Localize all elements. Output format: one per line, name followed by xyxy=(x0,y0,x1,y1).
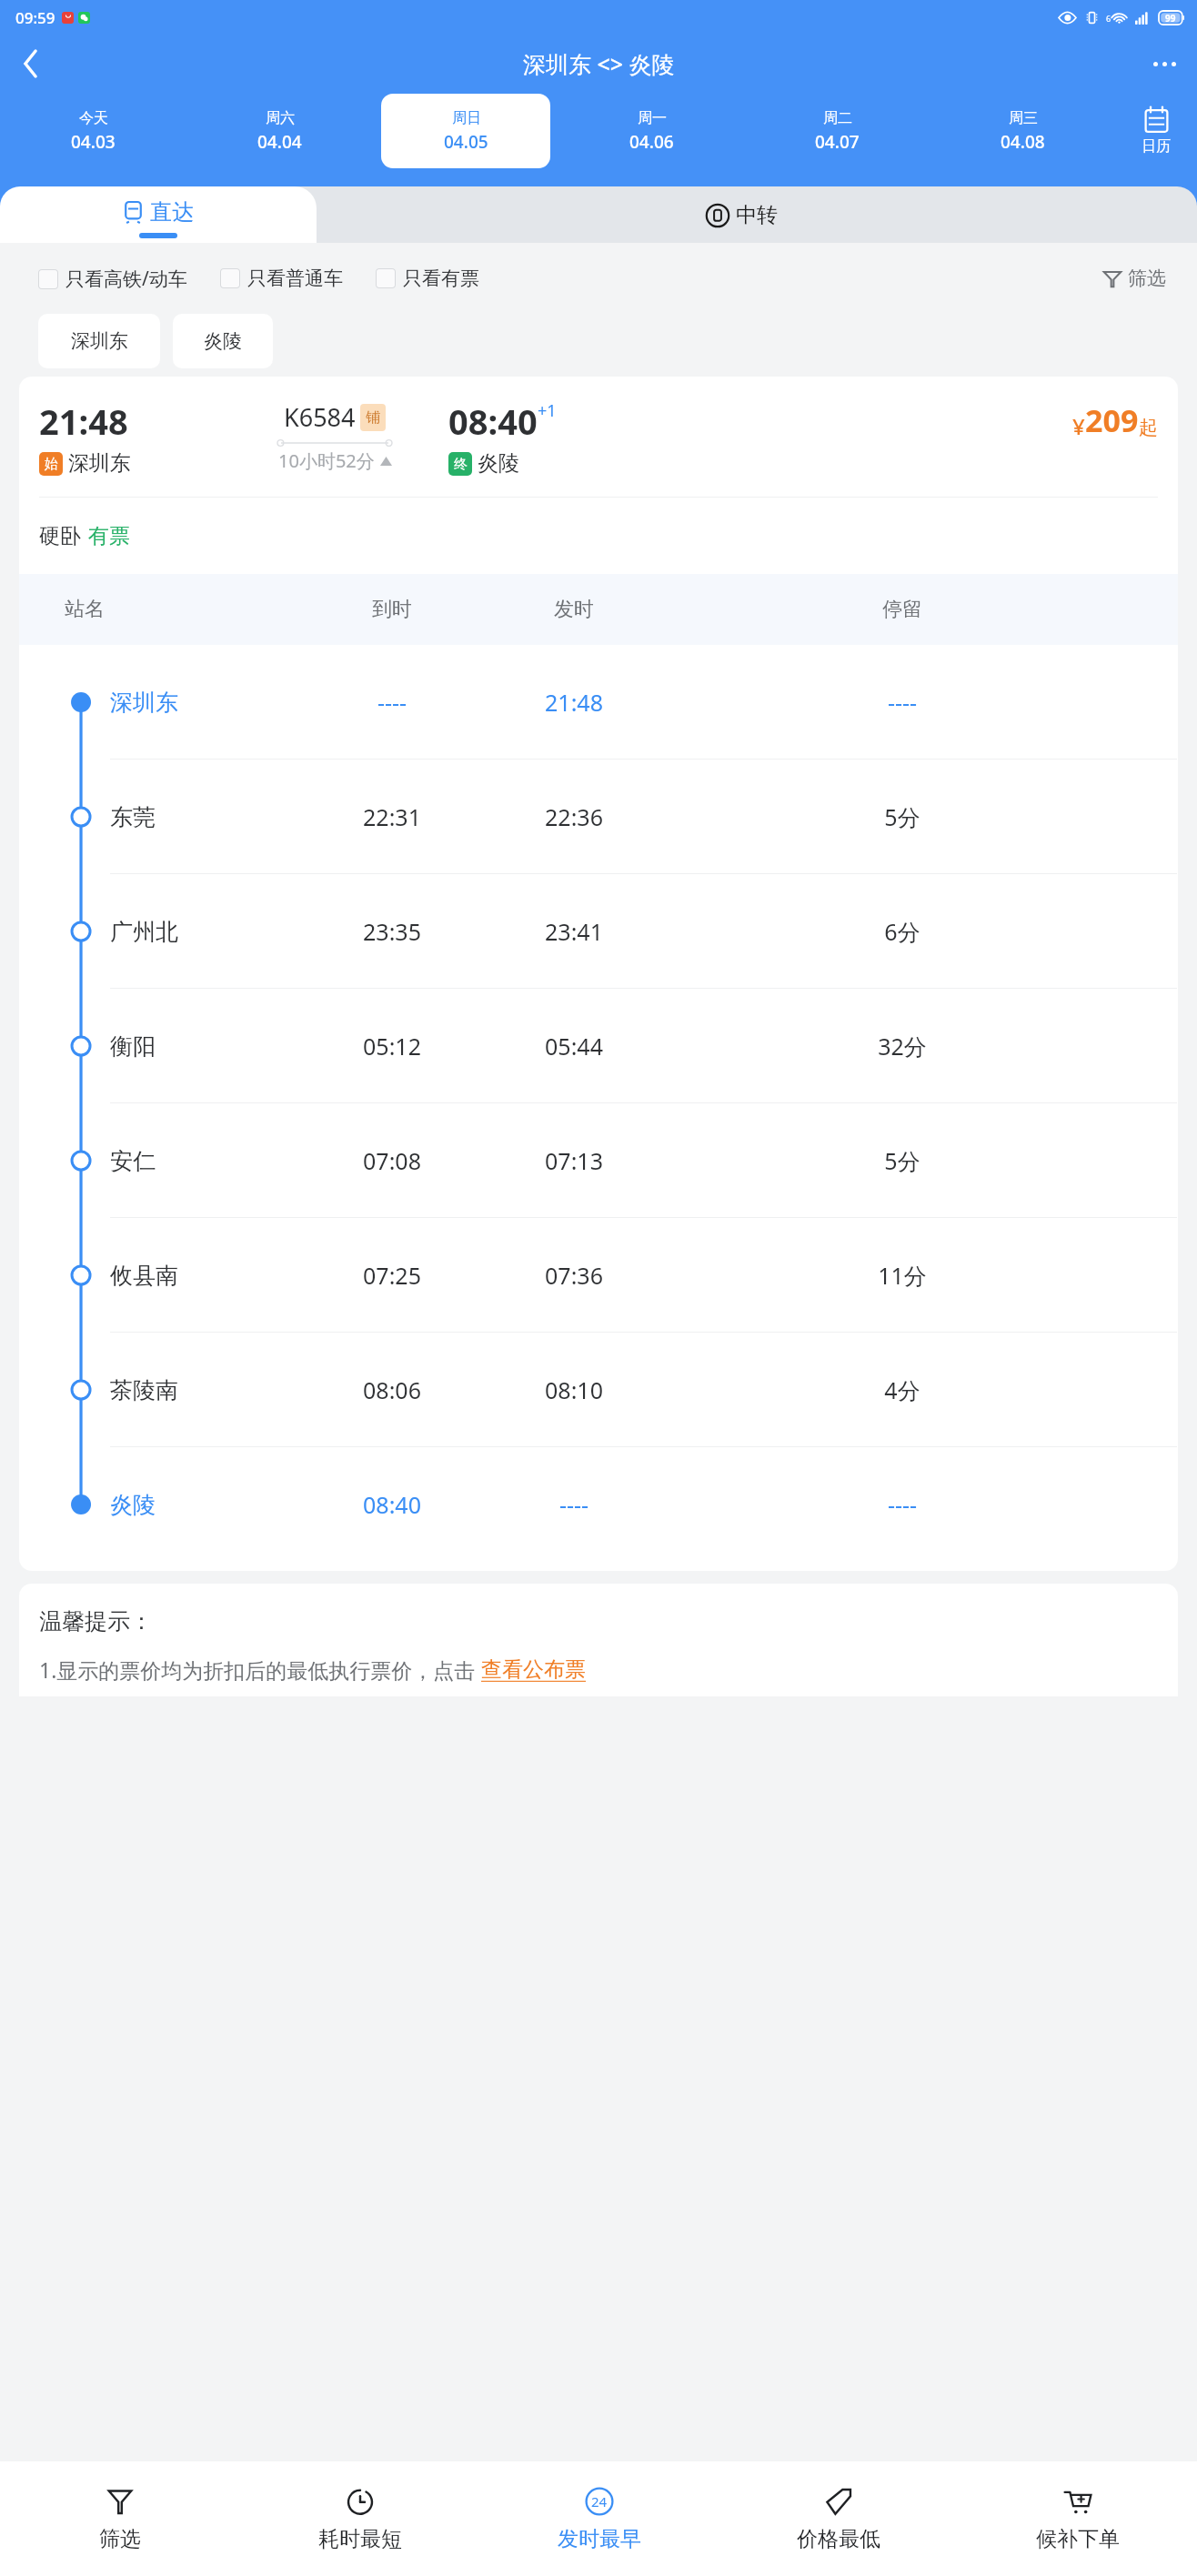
button[interactable]: 周六 xyxy=(195,94,365,168)
button[interactable]: 炎陵 xyxy=(173,314,273,368)
staticText: 炎陵 xyxy=(478,450,519,477)
button[interactable]: 价格最低 xyxy=(719,2461,958,2576)
button[interactable]: 中转 xyxy=(155,186,1197,243)
staticText: 深圳东 xyxy=(110,689,301,717)
staticText: 筛选 xyxy=(1128,267,1166,290)
staticText: 04.04 xyxy=(257,130,302,154)
staticText: 6分 xyxy=(665,916,1140,947)
staticText: 中转 xyxy=(736,202,778,228)
button[interactable]: 周一 xyxy=(567,94,736,168)
staticText: 深圳东 xyxy=(68,450,131,477)
staticText: 只看有票 xyxy=(403,267,479,290)
button[interactable]: 今天 xyxy=(8,94,178,168)
button[interactable]: 日历 xyxy=(1115,92,1197,170)
staticText: 09:59 xyxy=(15,7,55,28)
staticText: 候补下单 xyxy=(1036,2526,1120,2552)
staticText: ---- xyxy=(665,687,1140,718)
staticText: ¥ xyxy=(1072,411,1085,441)
staticText: 周日 xyxy=(452,109,481,127)
button[interactable]: 查看公布票 xyxy=(481,1656,586,1683)
staticText: 日历 xyxy=(1142,137,1171,156)
staticText: 22:31 xyxy=(301,801,483,832)
staticText: 22:36 xyxy=(483,801,665,832)
staticText: 08:40 xyxy=(301,1489,483,1520)
staticText: 终 xyxy=(454,456,468,473)
staticText: 23:41 xyxy=(483,916,665,947)
staticText: 东莞 xyxy=(110,803,301,831)
staticText: 21:48 xyxy=(39,397,128,445)
staticText: 21:48 xyxy=(483,687,665,718)
staticText: 11分 xyxy=(665,1260,1140,1291)
staticText: 始 xyxy=(45,456,58,473)
button[interactable]: 周三 xyxy=(938,94,1107,168)
button[interactable]: 筛选 xyxy=(1102,267,1166,290)
staticText: 04.03 xyxy=(71,130,116,154)
staticText: 5分 xyxy=(665,801,1140,832)
button[interactable]: More options xyxy=(1141,40,1188,87)
staticText: 209 xyxy=(1085,399,1139,441)
staticText: +1 xyxy=(538,399,557,422)
staticText: K6584 xyxy=(284,400,356,434)
staticText: 深圳东 xyxy=(71,329,128,353)
staticText: 攸县南 xyxy=(110,1262,301,1290)
staticText: 站名 xyxy=(65,597,301,622)
staticText: 24 xyxy=(591,2492,608,2511)
button[interactable]: 筛选 xyxy=(0,2461,240,2576)
staticText: 有票 xyxy=(88,523,130,549)
button[interactable]: 只看普通车 xyxy=(220,267,343,290)
button[interactable]: 候补下单 xyxy=(958,2461,1197,2576)
staticText: 07:36 xyxy=(483,1260,665,1291)
button[interactable]: 24 xyxy=(479,2461,719,2576)
staticText: 安仁 xyxy=(110,1147,301,1175)
staticText: 起 xyxy=(1139,416,1158,439)
staticText: 99 xyxy=(1165,12,1176,25)
staticText: 周六 xyxy=(266,109,295,127)
staticText: 炎陵 xyxy=(110,1491,301,1519)
staticText: 6 xyxy=(1106,13,1111,24)
staticText: 硬卧 xyxy=(39,523,81,549)
button[interactable]: 只看高铁/动车 xyxy=(38,266,187,292)
staticText: 停留 xyxy=(665,597,1140,622)
staticText: 10小时52分 xyxy=(278,448,375,473)
staticText: 08:40 xyxy=(448,397,538,445)
staticText: 04.08 xyxy=(1001,130,1045,154)
staticText: 04.05 xyxy=(444,130,488,154)
staticText: 发时最早 xyxy=(558,2526,641,2552)
staticText: 4分 xyxy=(665,1374,1140,1405)
staticText: 07:08 xyxy=(301,1145,483,1176)
staticText: 08:06 xyxy=(301,1374,483,1405)
staticText: 23:35 xyxy=(301,916,483,947)
button[interactable]: 直达 xyxy=(0,186,317,243)
staticText: 发时 xyxy=(483,597,665,622)
button[interactable]: Back xyxy=(7,40,55,87)
staticText: 04.06 xyxy=(629,130,674,154)
staticText: 直达 xyxy=(150,198,194,226)
staticText: 广州北 xyxy=(110,918,301,946)
staticText: 05:44 xyxy=(483,1031,665,1062)
staticText: ---- xyxy=(483,1489,665,1520)
staticText: 耗时最短 xyxy=(318,2526,402,2552)
staticText: 筛选 xyxy=(99,2526,141,2552)
staticText: 07:13 xyxy=(483,1145,665,1176)
button[interactable]: 耗时最短 xyxy=(240,2461,479,2576)
staticText: 价格最低 xyxy=(797,2526,880,2552)
button[interactable]: 深圳东 xyxy=(38,314,160,368)
staticText: 周三 xyxy=(1009,109,1038,127)
staticText: 炎陵 xyxy=(204,329,242,353)
staticText: 08:10 xyxy=(483,1374,665,1405)
staticText: 深圳东 <> 炎陵 xyxy=(523,48,675,79)
staticText: 衡阳 xyxy=(110,1032,301,1061)
button[interactable]: 只看有票 xyxy=(376,267,479,290)
staticText: 32分 xyxy=(665,1031,1140,1062)
staticText: 周一 xyxy=(638,109,667,127)
staticText: 只看普通车 xyxy=(247,267,343,290)
button[interactable]: 21:48 xyxy=(19,377,1178,1571)
staticText: 今天 xyxy=(79,109,108,127)
staticText: 只看高铁/动车 xyxy=(65,266,187,292)
staticText: 05:12 xyxy=(301,1031,483,1062)
staticText: 茶陵南 xyxy=(110,1376,301,1404)
button[interactable]: 周日 xyxy=(381,94,550,168)
button[interactable]: 周二 xyxy=(752,94,921,168)
staticText: 5分 xyxy=(665,1145,1140,1176)
staticText: 温馨提示： xyxy=(39,1607,153,1635)
